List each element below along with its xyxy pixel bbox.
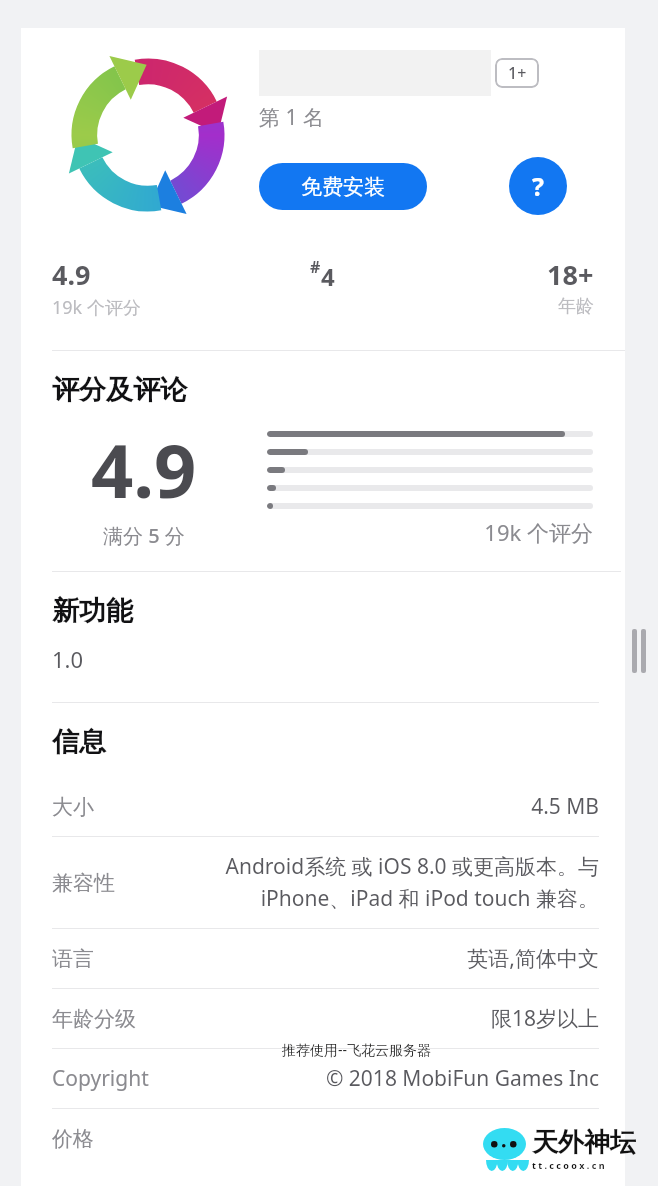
- staticText: t t . c c o o x . c n: [532, 1159, 605, 1171]
- staticText: 19k 个评分: [267, 517, 593, 547]
- staticText: 4.9: [91, 419, 197, 520]
- staticText: 评分及评论: [52, 373, 187, 407]
- button[interactable]: 免费安装: [259, 163, 427, 210]
- button[interactable]: 1+: [495, 58, 539, 88]
- button[interactable]: Help: [509, 157, 567, 215]
- staticText: 免费安装: [301, 174, 385, 200]
- staticText: 年龄分级: [52, 1006, 136, 1032]
- staticText: [110, 1124, 599, 1153]
- staticText: 4: [321, 260, 335, 293]
- staticText: 满分 5 分: [103, 522, 185, 549]
- staticText: 语言: [52, 946, 94, 972]
- staticText: 兼容性: [52, 870, 115, 896]
- staticText: 价格: [52, 1126, 94, 1152]
- staticText: ?: [532, 169, 544, 203]
- staticText: 4.5 MB: [110, 792, 599, 821]
- staticText: 大小: [52, 794, 94, 820]
- staticText: Android系统 或 iOS 8.0 或更高版本。与 iPhone、iPad …: [131, 852, 599, 913]
- staticText: 新功能: [52, 594, 133, 628]
- staticText: 1+: [508, 62, 527, 84]
- staticText: 1.0: [52, 644, 84, 674]
- staticText: 18+: [547, 256, 594, 293]
- staticText: 天外神坛: [532, 1126, 636, 1159]
- staticText: 第 1 名: [259, 103, 324, 132]
- staticText: 4.9: [52, 256, 91, 293]
- staticText: 年龄: [558, 295, 594, 318]
- staticText: 限18岁以上: [152, 1004, 599, 1033]
- staticText: Copyright: [52, 1064, 149, 1093]
- staticText: #: [310, 256, 321, 278]
- staticText: © 2018 MobiFun Games Inc: [165, 1064, 599, 1093]
- staticText: 信息: [52, 725, 106, 759]
- staticText: 19k 个评分: [52, 295, 141, 320]
- staticText: 推荐使用--飞花云服务器: [282, 1040, 432, 1059]
- staticText: 英语,简体中文: [110, 944, 599, 973]
